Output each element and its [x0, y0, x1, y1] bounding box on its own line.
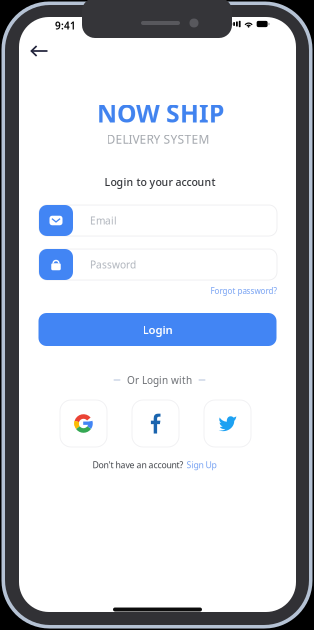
staticText: NOW SHIP	[97, 96, 224, 130]
staticText: 9:41	[55, 19, 76, 32]
button[interactable]: Back	[25, 39, 53, 63]
staticText: DELIVERY SYSTEM	[106, 131, 209, 147]
button[interactable]: Continue with Google	[60, 400, 107, 447]
staticText: Don't have an account?	[92, 459, 183, 471]
staticText: Forgot password?	[210, 286, 276, 296]
staticText: Password	[90, 258, 136, 271]
button[interactable]: Continue with Facebook	[132, 400, 179, 447]
button[interactable]: Don't have an account?	[92, 459, 216, 471]
staticText: Login	[142, 322, 172, 337]
staticText: Sign Up	[186, 459, 216, 471]
staticText: Login to your account	[104, 175, 215, 189]
button[interactable]: Forgot password?	[210, 286, 276, 296]
button[interactable]: Continue with Twitter	[204, 400, 251, 447]
staticText: Email	[90, 214, 117, 227]
button[interactable]: Login	[38, 313, 276, 346]
staticText: Or Login with	[127, 373, 192, 387]
